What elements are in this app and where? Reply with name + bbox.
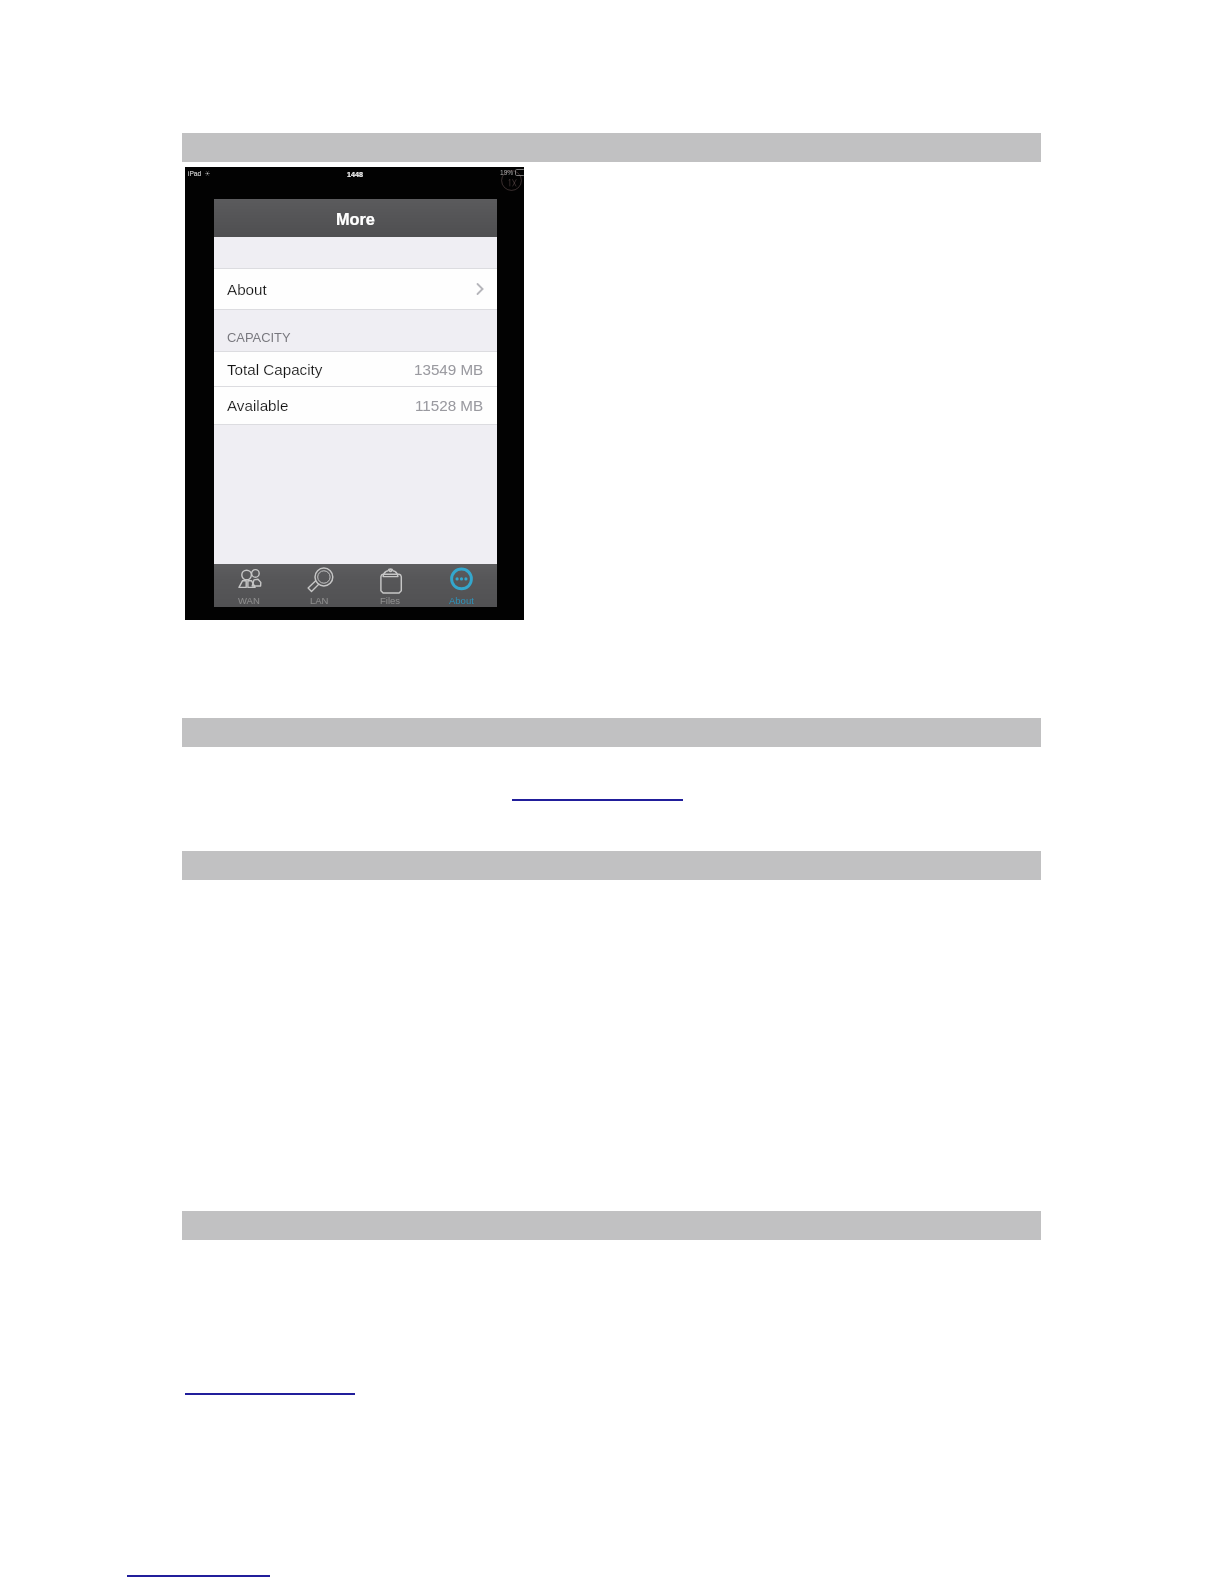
staticText: About [449, 595, 474, 606]
button[interactable]: Files [355, 564, 426, 607]
staticText: iPad [188, 170, 202, 177]
button[interactable]: LAN [284, 564, 355, 607]
staticText: 1448 [347, 170, 363, 178]
staticText: About [227, 281, 267, 298]
staticText: Files [380, 595, 401, 606]
staticText: 13549 MB [414, 361, 484, 378]
button[interactable]: WAN [214, 564, 284, 607]
staticText: More [336, 210, 375, 228]
button[interactable]: Total Capacity [214, 352, 497, 386]
staticText: WAN [238, 595, 260, 606]
staticText: Total Capacity [227, 361, 323, 378]
button[interactable]: About [426, 564, 497, 607]
button[interactable]: Available [214, 387, 497, 424]
staticText: 11528 MB [415, 397, 484, 414]
staticText: CAPACITY [227, 330, 291, 344]
button[interactable]: About [214, 269, 497, 309]
staticText: LAN [310, 595, 329, 606]
staticText: Available [227, 397, 289, 414]
staticText: 19% [500, 169, 514, 176]
